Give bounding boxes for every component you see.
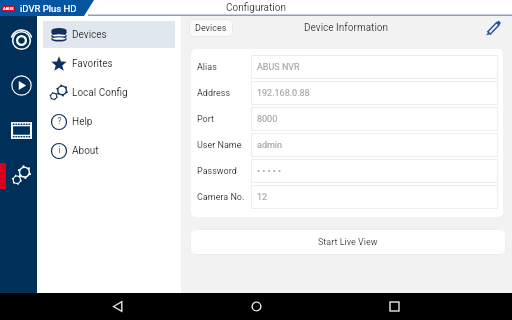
button[interactable]: Recent apps [374,293,414,320]
button[interactable]: Start Live View [190,229,506,255]
button[interactable]: Favorites [43,50,175,77]
button[interactable]: Local Config [43,79,175,106]
staticText: User Name [197,140,242,151]
button[interactable]: i [43,137,175,164]
button[interactable]: Edit [483,18,503,38]
staticText: ? [57,116,62,127]
staticText: Devices [72,29,107,41]
button[interactable]: Devices [43,21,175,48]
staticText: 192.168.0.88 [257,88,310,99]
staticText: 8000 [257,114,278,125]
button[interactable]: Recordings [0,108,37,153]
staticText: Port [197,114,214,125]
staticText: Device Information [304,22,389,34]
staticText: ABUS NVR [257,62,300,73]
staticText: Devices [195,23,227,34]
staticText: ABUS [3,6,14,11]
button[interactable]: Live view [0,18,37,63]
staticText: 12 [257,192,268,203]
staticText: Alias [197,62,217,73]
staticText: Password [197,166,237,177]
button[interactable]: Configuration [0,153,37,198]
staticText: Local Config [72,87,128,99]
staticText: Start Live View [318,237,378,248]
button[interactable]: Playback [0,63,37,108]
staticText: admin [257,140,283,151]
staticText: About [72,145,99,157]
button[interactable]: Back [98,293,138,320]
staticText: iDVR Plus HD [20,3,77,14]
staticText: Camera No. [197,192,245,203]
button[interactable]: Devices [189,19,233,37]
staticText: Help [72,116,93,128]
staticText: • • • • • [257,166,282,177]
staticText: i [58,145,61,156]
button[interactable]: ? [43,108,175,135]
button[interactable]: Home [236,293,276,320]
staticText: Favorites [72,58,113,70]
staticText: Address [197,88,231,99]
staticText: Configuration [226,2,286,14]
